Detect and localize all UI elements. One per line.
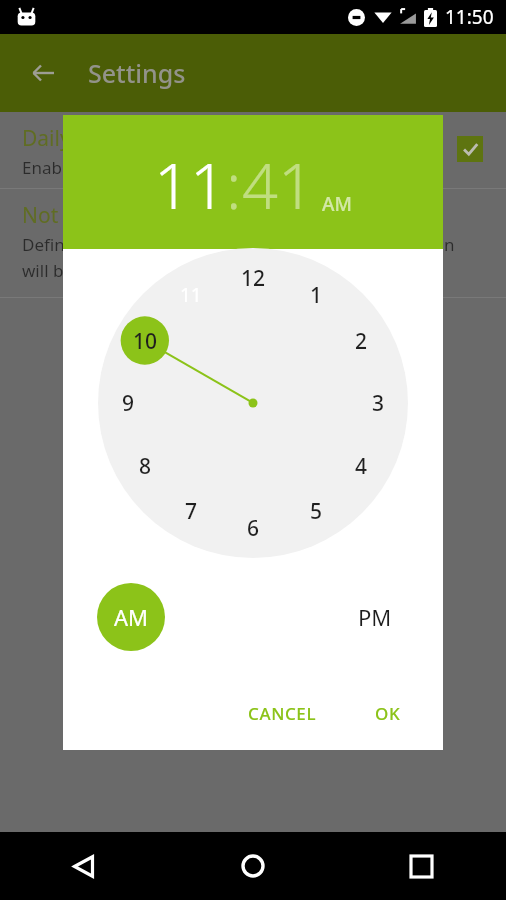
button[interactable]: Daily (0, 112, 506, 188)
staticText: 8 (139, 452, 152, 481)
staticText: 4 (355, 452, 368, 481)
staticText: AM (114, 602, 149, 632)
staticText: PM (358, 602, 392, 632)
button[interactable]: Home (168, 832, 337, 900)
staticText: 12 (241, 264, 266, 293)
staticText: Daily (22, 124, 71, 153)
button[interactable]: AM (322, 191, 352, 217)
staticText: OK (375, 702, 401, 725)
button[interactable]: Back (0, 832, 168, 900)
button[interactable]: 1 (294, 277, 338, 313)
staticText: 2 (355, 327, 368, 356)
button[interactable]: 11 (154, 142, 226, 228)
button[interactable]: 9 (106, 385, 150, 421)
staticText: 9 (122, 389, 135, 418)
button[interactable]: 7 (169, 493, 213, 529)
button[interactable]: CANCEL (236, 692, 329, 735)
button[interactable]: Not (0, 189, 506, 297)
staticText: 11 (180, 282, 202, 308)
staticText: will b (22, 259, 64, 282)
staticText: 1 (310, 281, 323, 310)
button[interactable]: 4 (339, 448, 383, 484)
staticText: CANCEL (248, 702, 317, 725)
staticText: Settings (88, 56, 186, 90)
staticText: Enable (22, 156, 76, 179)
button[interactable]: Recent apps (337, 832, 506, 900)
button[interactable]: AM (97, 583, 165, 651)
button[interactable]: Back (20, 50, 66, 96)
button[interactable]: 5 (294, 493, 338, 529)
button[interactable]: 12 (231, 260, 275, 296)
staticText: 5 (310, 497, 323, 526)
staticText: n (444, 233, 455, 256)
staticText: Defin (22, 233, 65, 256)
staticText: 3 (372, 389, 385, 418)
staticText: AM (322, 191, 352, 217)
staticText: Not (22, 201, 59, 230)
button[interactable]: OK (363, 692, 413, 735)
button[interactable]: 8 (123, 448, 167, 484)
button[interactable]: 3 (356, 385, 400, 421)
button[interactable]: 41 (242, 142, 314, 228)
button[interactable]: 10 (123, 323, 167, 359)
staticText: 10 (133, 327, 158, 356)
button[interactable]: 6 (231, 510, 275, 546)
staticText: 7 (185, 497, 198, 526)
staticText: 6 (247, 514, 260, 543)
staticText: : (226, 142, 242, 228)
button[interactable]: PM (341, 583, 409, 651)
staticText: 11:50 (445, 4, 494, 30)
button[interactable]: 2 (339, 323, 383, 359)
